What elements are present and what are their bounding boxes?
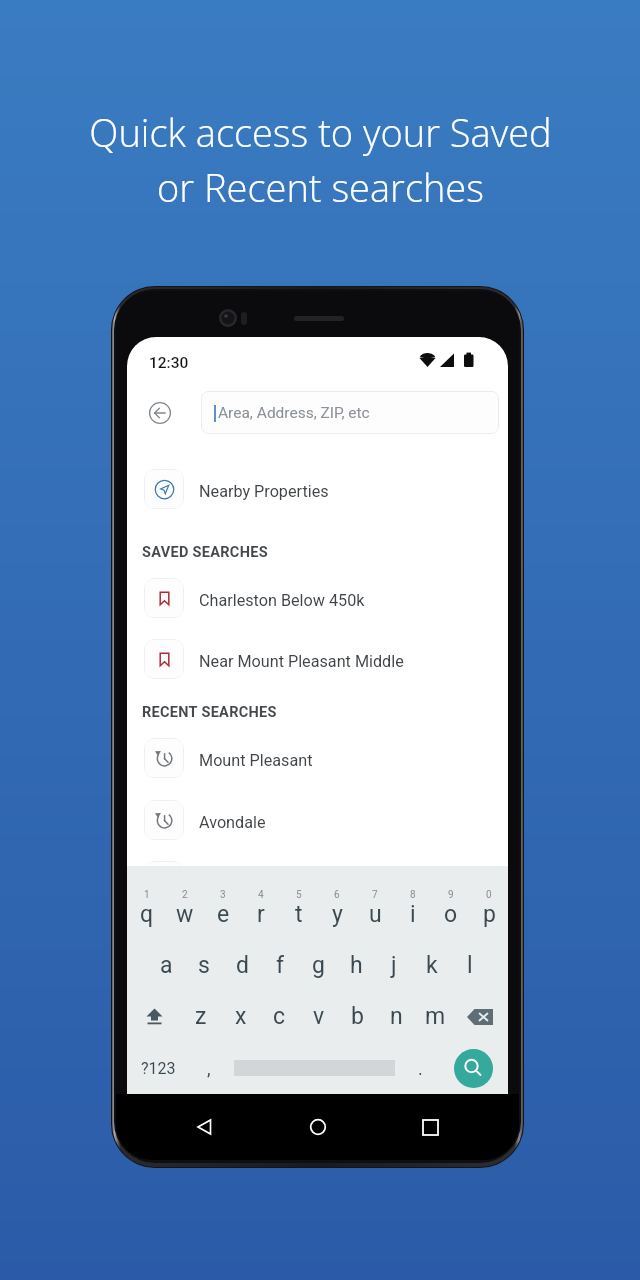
staticText: Near Mount Pleasant Middle (199, 652, 404, 671)
staticText: 3 (220, 889, 226, 901)
button[interactable]: Backspace (455, 991, 508, 1042)
staticText: y (332, 901, 343, 928)
button[interactable]: s (185, 940, 223, 991)
button[interactable]: ?123 (127, 1042, 190, 1094)
staticText: Mount Pleasant (199, 751, 313, 770)
button[interactable]: f (261, 940, 299, 991)
staticText: d (236, 952, 249, 979)
button[interactable]: Back (145, 398, 174, 427)
button[interactable]: Back (181, 1103, 229, 1151)
staticText: t (295, 901, 303, 928)
button[interactable]: Shift (127, 991, 181, 1042)
staticText: m (425, 1003, 446, 1030)
button[interactable]: 3 (204, 866, 242, 940)
button[interactable]: 4 (242, 866, 280, 940)
staticText: a (160, 952, 173, 979)
button[interactable]: 2 (166, 866, 204, 940)
staticText: s (198, 952, 210, 979)
button[interactable]: b (338, 991, 377, 1042)
button[interactable]: k (413, 940, 451, 991)
button[interactable]: 7 (356, 866, 394, 940)
staticText: f (276, 952, 284, 979)
button[interactable]: Space (228, 1042, 401, 1094)
button[interactable]: m (416, 991, 455, 1042)
staticText: i (410, 901, 416, 928)
button[interactable]: 9 (432, 866, 470, 940)
staticText: 6 (334, 889, 340, 901)
button[interactable]: 1 (127, 866, 166, 940)
staticText: j (391, 952, 397, 979)
button[interactable]: Search (454, 1049, 493, 1088)
staticText: Nearby Properties (199, 482, 329, 501)
button[interactable]: l (451, 940, 489, 991)
staticText: g (312, 952, 325, 979)
staticText: 12:30 (149, 354, 189, 372)
button[interactable]: 5 (280, 866, 318, 940)
button[interactable]: Area, Address, ZIP, etc (201, 391, 499, 434)
staticText: 4 (258, 889, 264, 901)
staticText: q (140, 901, 154, 928)
staticText: c (273, 1003, 286, 1030)
button[interactable]: Avondale (127, 790, 508, 850)
staticText: 1 (144, 889, 150, 901)
staticText: 0 (486, 889, 492, 901)
staticText: u (369, 901, 382, 928)
button[interactable]: c (260, 991, 299, 1042)
staticText: 8 (410, 889, 416, 901)
button[interactable]: g (299, 940, 337, 991)
staticText: SAVED SEARCHES (142, 544, 268, 561)
staticText: w (176, 901, 194, 928)
button[interactable]: a (147, 940, 185, 991)
staticText: or Recent searches (157, 161, 484, 213)
button[interactable]: . (401, 1042, 439, 1094)
button[interactable]: Mount Pleasant (127, 728, 508, 788)
staticText: . (418, 1058, 423, 1079)
staticText: 2 (182, 889, 188, 901)
button[interactable]: 8 (394, 866, 432, 940)
staticText: h (350, 952, 363, 979)
button[interactable]: , (190, 1042, 228, 1094)
button[interactable] (127, 851, 508, 911)
staticText: 7 (372, 889, 378, 901)
button[interactable]: Recents (406, 1103, 454, 1151)
staticText: z (195, 1003, 207, 1030)
staticText: l (467, 952, 473, 979)
staticText: Charleston Below 450k (199, 591, 365, 610)
staticText: o (444, 901, 458, 928)
staticText: x (235, 1003, 247, 1030)
button[interactable]: v (299, 991, 338, 1042)
staticText: e (217, 901, 230, 928)
button[interactable]: 0 (470, 866, 508, 940)
button[interactable]: j (375, 940, 413, 991)
staticText: b (351, 1003, 364, 1030)
button[interactable]: Charleston Below 450k (127, 568, 508, 628)
staticText: ?123 (141, 1059, 176, 1078)
staticText: p (483, 901, 496, 928)
staticText: , (207, 1058, 211, 1079)
button[interactable]: 6 (318, 866, 356, 940)
staticText: Area, Address, ZIP, etc (218, 404, 370, 422)
button[interactable]: Nearby Properties (127, 459, 508, 519)
staticText: 5 (296, 889, 302, 901)
button[interactable]: Home (294, 1103, 342, 1151)
button[interactable]: z (181, 991, 221, 1042)
button[interactable]: x (221, 991, 260, 1042)
button[interactable]: h (337, 940, 375, 991)
staticText: RECENT SEARCHES (142, 704, 277, 721)
button[interactable]: n (377, 991, 416, 1042)
staticText: 9 (448, 889, 454, 901)
button[interactable]: d (223, 940, 261, 991)
staticText: r (257, 901, 265, 928)
staticText: n (390, 1003, 403, 1030)
staticText: Avondale (199, 813, 266, 832)
button[interactable]: Near Mount Pleasant Middle (127, 629, 508, 689)
staticText: Quick access to your Saved (89, 106, 552, 158)
staticText: v (313, 1003, 325, 1030)
staticText: k (426, 952, 438, 979)
